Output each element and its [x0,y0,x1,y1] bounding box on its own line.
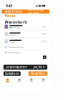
button[interactable]: Profil [37,76,49,84]
staticText: + [44,55,46,59]
button[interactable] [1,23,49,30]
staticText: 24,90 € [33,65,45,69]
button[interactable] [1,45,49,50]
staticText: Pusst [4,13,15,18]
button[interactable]: Gutschein [3,71,21,76]
button[interactable]: Suche [13,76,25,84]
button[interactable] [1,50,49,55]
button[interactable]: Home [1,76,13,84]
staticText: Abholung · 30 min [28,8,45,15]
button[interactable]: Bestellen [28,71,47,76]
staticText: Lieferung [8,10,22,13]
staticText: 9:41 [5,3,12,8]
button[interactable]: Bestellungen [25,76,37,84]
staticText: Bestellen [31,72,45,75]
staticText: Gutschein [5,72,19,75]
button[interactable]: Abholung · 30 min [27,9,46,13]
staticText: Gesamtsumme [5,65,27,69]
button[interactable] [1,38,49,45]
button[interactable]: Lieferung [4,9,23,13]
button[interactable]: Add item [43,55,46,59]
button[interactable] [1,30,49,37]
staticText: Warenkorb [4,19,27,24]
